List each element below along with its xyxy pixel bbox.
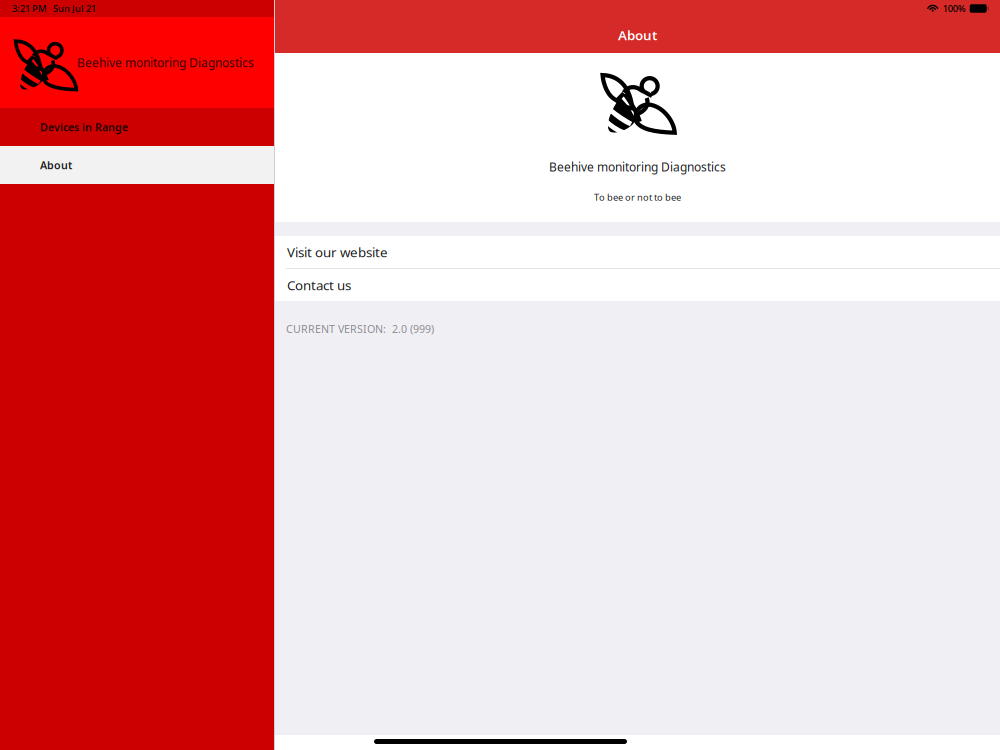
staticText: About [40,158,72,172]
staticText: To bee or not to bee [594,191,681,203]
staticText: Sun Jul 21 [53,2,96,15]
staticText: About [618,26,657,44]
staticText: CURRENT VERSION: 2.0 (999) [286,322,434,336]
staticText: 100% [943,2,966,15]
staticText: Devices in Range [40,120,128,134]
button[interactable]: Contact us [275,269,1000,301]
staticText: 3:21 PM [12,2,47,15]
staticText: Beehive monitoring Diagnostics [549,159,726,175]
staticText: Beehive monitoring Diagnostics [77,54,254,70]
button[interactable]: Visit our website [275,236,1000,268]
staticText: Visit our website [287,243,388,261]
staticText: Contact us [287,276,351,294]
button[interactable]: About [0,146,274,184]
button[interactable]: Devices in Range [0,108,274,146]
